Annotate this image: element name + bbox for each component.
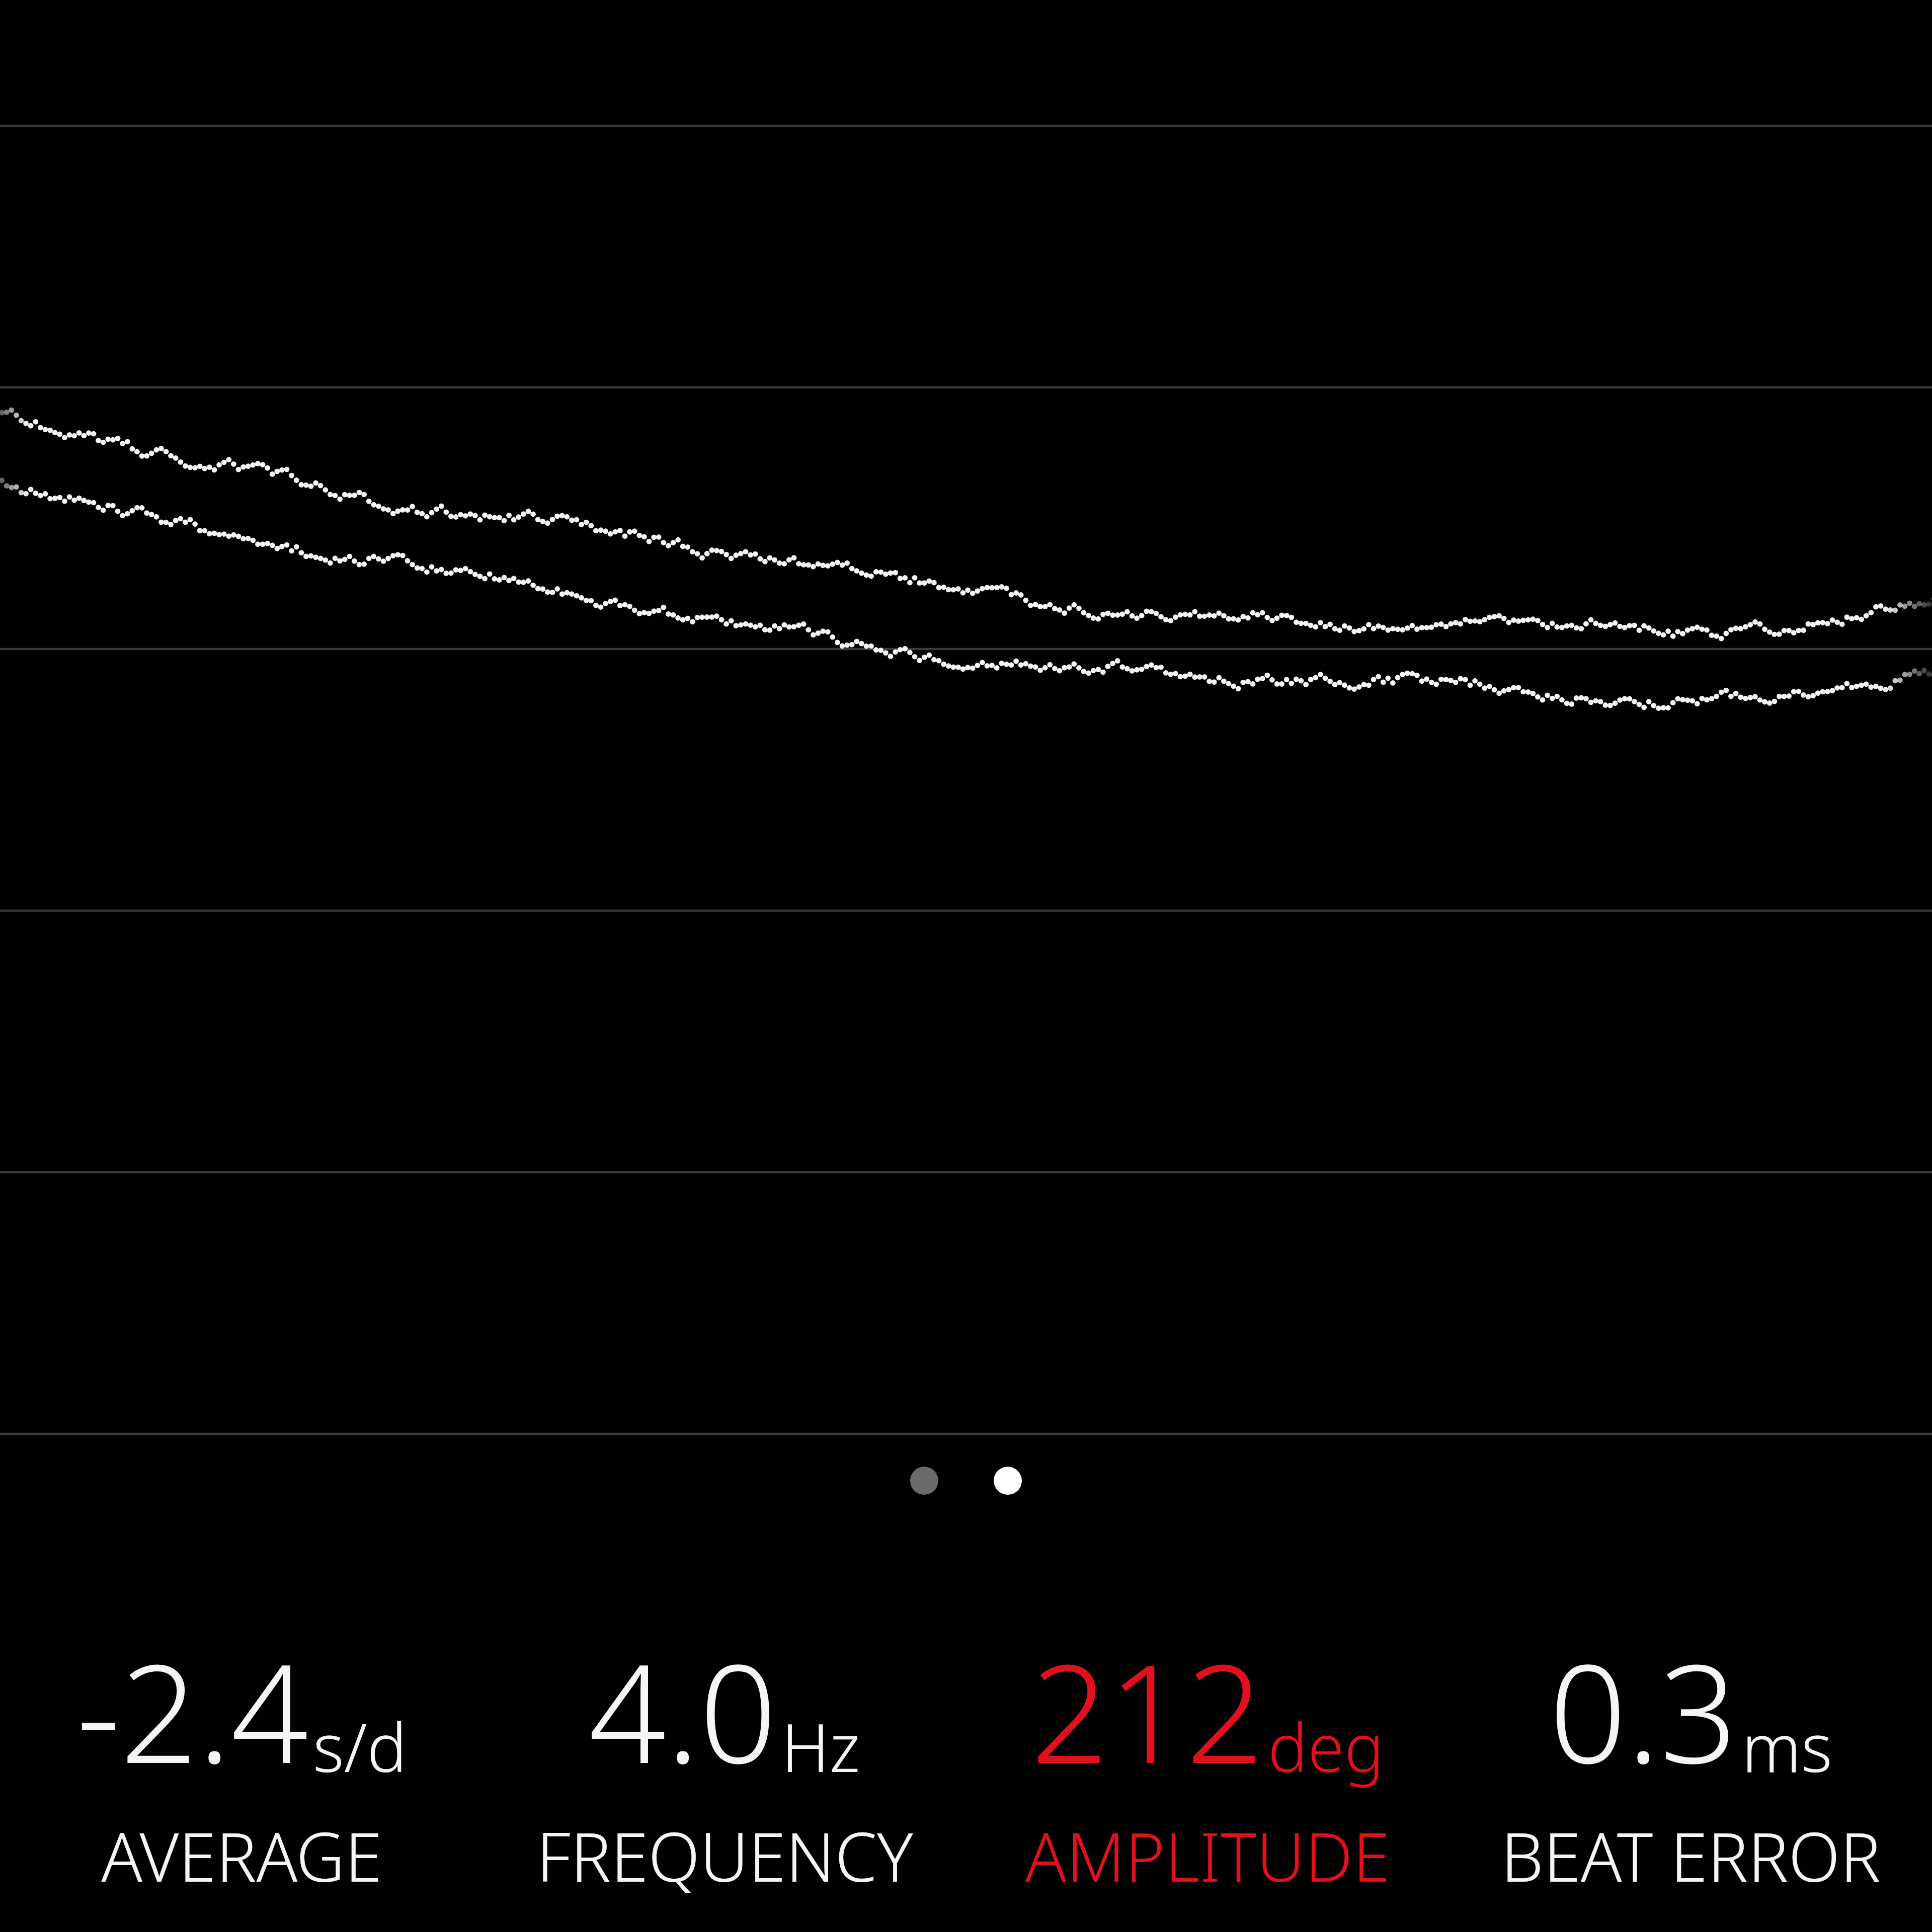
button[interactable]: 0.3 — [1449, 1618, 1932, 1902]
staticText: ms — [1742, 1701, 1832, 1792]
button[interactable]: 4.0 — [483, 1618, 966, 1902]
staticText: 4.0 — [589, 1618, 777, 1803]
staticText: BEAT ERROR — [1501, 1810, 1881, 1902]
staticText: FREQUENCY — [536, 1810, 913, 1902]
staticText: deg — [1268, 1701, 1384, 1792]
staticText: 212 — [1031, 1618, 1264, 1803]
button[interactable]: 212 — [966, 1618, 1449, 1902]
staticText: Hz — [781, 1701, 860, 1792]
button[interactable]: -2.4 — [0, 1618, 483, 1902]
staticText: 0.3 — [1549, 1618, 1738, 1803]
button[interactable]: Page 2 of 2 — [0, 1467, 1932, 1495]
staticText: AMPLITUDE — [1025, 1810, 1390, 1902]
staticText: s/d — [313, 1701, 407, 1792]
staticText: -2.4 — [76, 1618, 309, 1803]
staticText: AVERAGE — [101, 1810, 382, 1902]
